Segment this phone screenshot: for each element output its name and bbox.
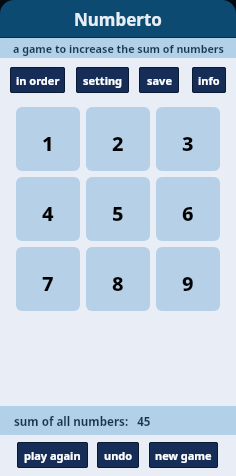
staticText: a game to increase the sum of numbers [13,42,224,57]
button[interactable]: info [192,67,226,93]
staticText: setting [83,73,123,88]
staticText: 7 [42,270,54,297]
button[interactable]: 3 [156,107,220,171]
staticText: play again [24,448,81,463]
staticText: Numberto [74,8,162,31]
staticText: in order [16,73,60,88]
staticText: 3 [182,130,194,157]
button[interactable]: setting [76,67,129,93]
button[interactable]: 6 [156,177,220,241]
staticText: 8 [112,270,124,297]
staticText: 1 [42,130,54,157]
button[interactable]: in order [10,67,65,93]
button[interactable]: save [139,67,179,93]
staticText: 5 [112,200,124,227]
button[interactable]: 8 [86,247,150,311]
button[interactable]: 1 [16,107,80,171]
button[interactable]: 9 [156,247,220,311]
staticText: new game [155,448,212,463]
button[interactable]: play again [17,442,88,468]
staticText: sum of all numbers: 45 [14,414,151,430]
staticText: 4 [42,200,54,227]
staticText: save [147,73,172,88]
staticText: 6 [182,200,194,227]
button[interactable]: 7 [16,247,80,311]
staticText: 2 [112,130,124,157]
button[interactable]: new game [149,442,218,468]
staticText: undo [104,448,133,463]
button[interactable]: undo [97,442,139,468]
button[interactable]: 4 [16,177,80,241]
staticText: info [198,73,220,88]
button[interactable]: 5 [86,177,150,241]
button[interactable]: 2 [86,107,150,171]
staticText: 9 [182,270,194,297]
